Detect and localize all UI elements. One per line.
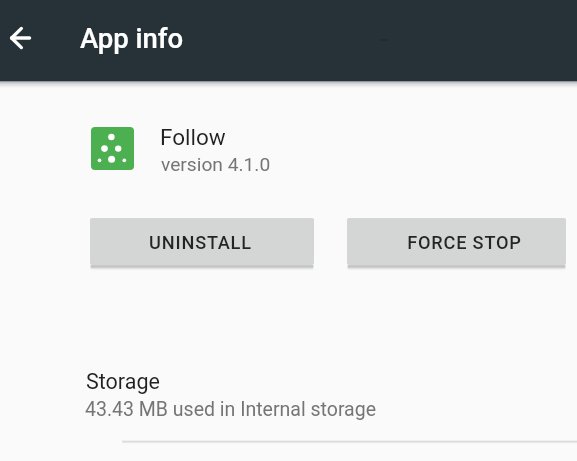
staticText: version 4.1.0	[161, 153, 271, 176]
button[interactable]: FORCE STOP	[347, 218, 566, 265]
staticText: FORCE STOP	[407, 232, 522, 253]
button[interactable]: Storage	[0, 352, 577, 441]
button[interactable]: Back	[0, 14, 42, 62]
staticText: UNINSTALL	[149, 232, 252, 253]
staticText: App info	[80, 22, 184, 54]
staticText: Storage	[86, 369, 160, 394]
staticText: 43.43 MB used in Internal storage	[85, 398, 377, 421]
button[interactable]: UNINSTALL	[90, 218, 314, 265]
staticText: Follow	[160, 124, 226, 150]
